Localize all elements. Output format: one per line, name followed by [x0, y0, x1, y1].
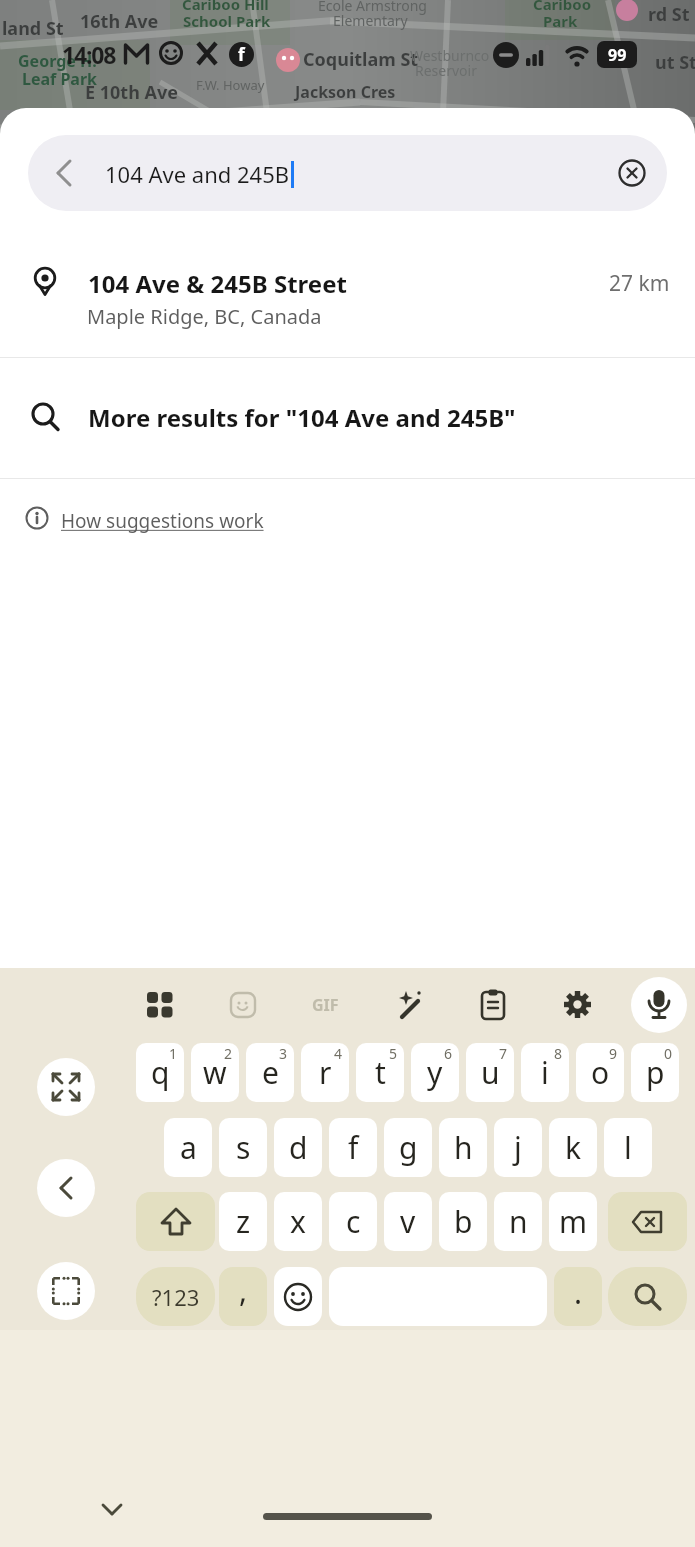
button[interactable]: How suggestions work	[0, 493, 280, 543]
staticText: land St	[2, 16, 64, 41]
staticText: Jackson Cres	[295, 81, 396, 103]
staticText: s	[236, 1127, 251, 1168]
staticText: E 10th Ave	[85, 80, 179, 105]
button[interactable]: u	[466, 1043, 514, 1102]
button[interactable]	[37, 1159, 95, 1217]
staticText: How suggestions work	[61, 508, 264, 534]
staticText: 3	[279, 1044, 288, 1063]
staticText: 104 Ave & 245B Street	[88, 267, 347, 300]
button[interactable]: p	[631, 1043, 679, 1102]
staticText: t	[375, 1052, 386, 1093]
staticText: Ecole Armstrong	[318, 0, 427, 15]
button[interactable]: l	[604, 1118, 652, 1177]
staticText: n	[509, 1201, 528, 1242]
button[interactable]	[608, 1267, 687, 1326]
staticText: ,	[239, 1270, 248, 1311]
staticText: k	[565, 1127, 582, 1168]
staticText: o	[591, 1052, 610, 1093]
button[interactable]	[274, 1267, 322, 1326]
staticText: 27 km	[609, 269, 670, 298]
button[interactable]: z	[219, 1192, 267, 1251]
button[interactable]: w	[191, 1043, 239, 1102]
staticText: GIF	[312, 994, 339, 1016]
button[interactable]: 104 Ave & 245B Street	[0, 250, 695, 357]
staticText: g	[399, 1127, 418, 1168]
button[interactable]	[88, 1496, 136, 1526]
staticText: j	[514, 1127, 522, 1168]
button[interactable]: j	[494, 1118, 542, 1177]
button[interactable]	[631, 977, 687, 1033]
staticText: z	[236, 1201, 251, 1242]
staticText: .	[574, 1272, 583, 1313]
button[interactable]	[263, 1513, 432, 1520]
button[interactable]: r	[301, 1043, 349, 1102]
button[interactable]: t	[356, 1043, 404, 1102]
staticText: School Park	[183, 11, 271, 31]
button[interactable]: i	[521, 1043, 569, 1102]
staticText: More results for "104 Ave and 245B"	[88, 401, 516, 434]
button[interactable]: x	[274, 1192, 322, 1251]
button[interactable]	[146, 991, 174, 1019]
staticText: w	[203, 1052, 227, 1093]
button[interactable]: More results for "104 Ave and 245B"	[0, 358, 695, 478]
button[interactable]: s	[219, 1118, 267, 1177]
staticText: Cariboo	[533, 0, 592, 14]
staticText: u	[481, 1052, 500, 1093]
button[interactable]: a	[164, 1118, 212, 1177]
button[interactable]: f	[329, 1118, 377, 1177]
staticText: 6	[444, 1044, 453, 1063]
staticText: x	[290, 1201, 306, 1242]
button[interactable]: n	[494, 1192, 542, 1251]
button[interactable]	[37, 1058, 95, 1116]
staticText: 2	[224, 1044, 233, 1063]
button[interactable]: m	[549, 1192, 597, 1251]
staticText: 8	[554, 1044, 563, 1063]
staticText: h	[454, 1127, 473, 1168]
button[interactable]: .	[554, 1267, 602, 1326]
button[interactable]: d	[274, 1118, 322, 1177]
staticText: 9	[609, 1044, 618, 1063]
staticText: Leaf Park	[22, 68, 98, 90]
staticText: f	[238, 43, 245, 66]
button[interactable]: b	[439, 1192, 487, 1251]
button[interactable]: GIF	[310, 994, 350, 1018]
staticText: rd St	[648, 2, 690, 27]
button[interactable]: e	[246, 1043, 294, 1102]
button[interactable]: o	[576, 1043, 624, 1102]
button[interactable]	[608, 1192, 687, 1251]
staticText: 4	[334, 1044, 343, 1063]
button[interactable]	[394, 989, 426, 1021]
staticText: i	[541, 1052, 549, 1093]
staticText: 104 Ave and 245B	[105, 159, 290, 189]
staticText: Westburnco	[410, 46, 490, 65]
staticText: Coquitlam St	[303, 47, 419, 72]
button[interactable]: q	[136, 1043, 184, 1102]
button[interactable]: ?123	[136, 1267, 215, 1326]
button[interactable]: 104 Ave and 245B	[28, 135, 667, 211]
staticText: 0	[664, 1044, 673, 1063]
button[interactable]	[478, 989, 508, 1019]
button[interactable]: k	[549, 1118, 597, 1177]
button[interactable]: c	[329, 1192, 377, 1251]
staticText: F.W. Howay	[196, 76, 265, 94]
staticText: 14:08	[62, 39, 116, 70]
button[interactable]: g	[384, 1118, 432, 1177]
button[interactable]: v	[384, 1192, 432, 1251]
button[interactable]	[562, 989, 593, 1020]
button[interactable]: h	[439, 1118, 487, 1177]
staticText: r	[319, 1052, 332, 1093]
staticText: Cariboo Hill	[182, 0, 269, 14]
button[interactable]	[37, 1262, 95, 1320]
staticText: e	[262, 1052, 279, 1093]
button[interactable]	[229, 991, 257, 1019]
staticText: 7	[499, 1044, 508, 1063]
button[interactable]: y	[411, 1043, 459, 1102]
button[interactable]	[136, 1192, 215, 1251]
staticText: George H.	[18, 50, 97, 72]
button[interactable]: ,	[219, 1267, 267, 1326]
staticText: 1	[169, 1044, 178, 1063]
staticText: a	[180, 1127, 197, 1168]
staticText: ?123	[152, 1282, 200, 1312]
button[interactable]	[329, 1267, 547, 1326]
staticText: p	[646, 1052, 665, 1093]
